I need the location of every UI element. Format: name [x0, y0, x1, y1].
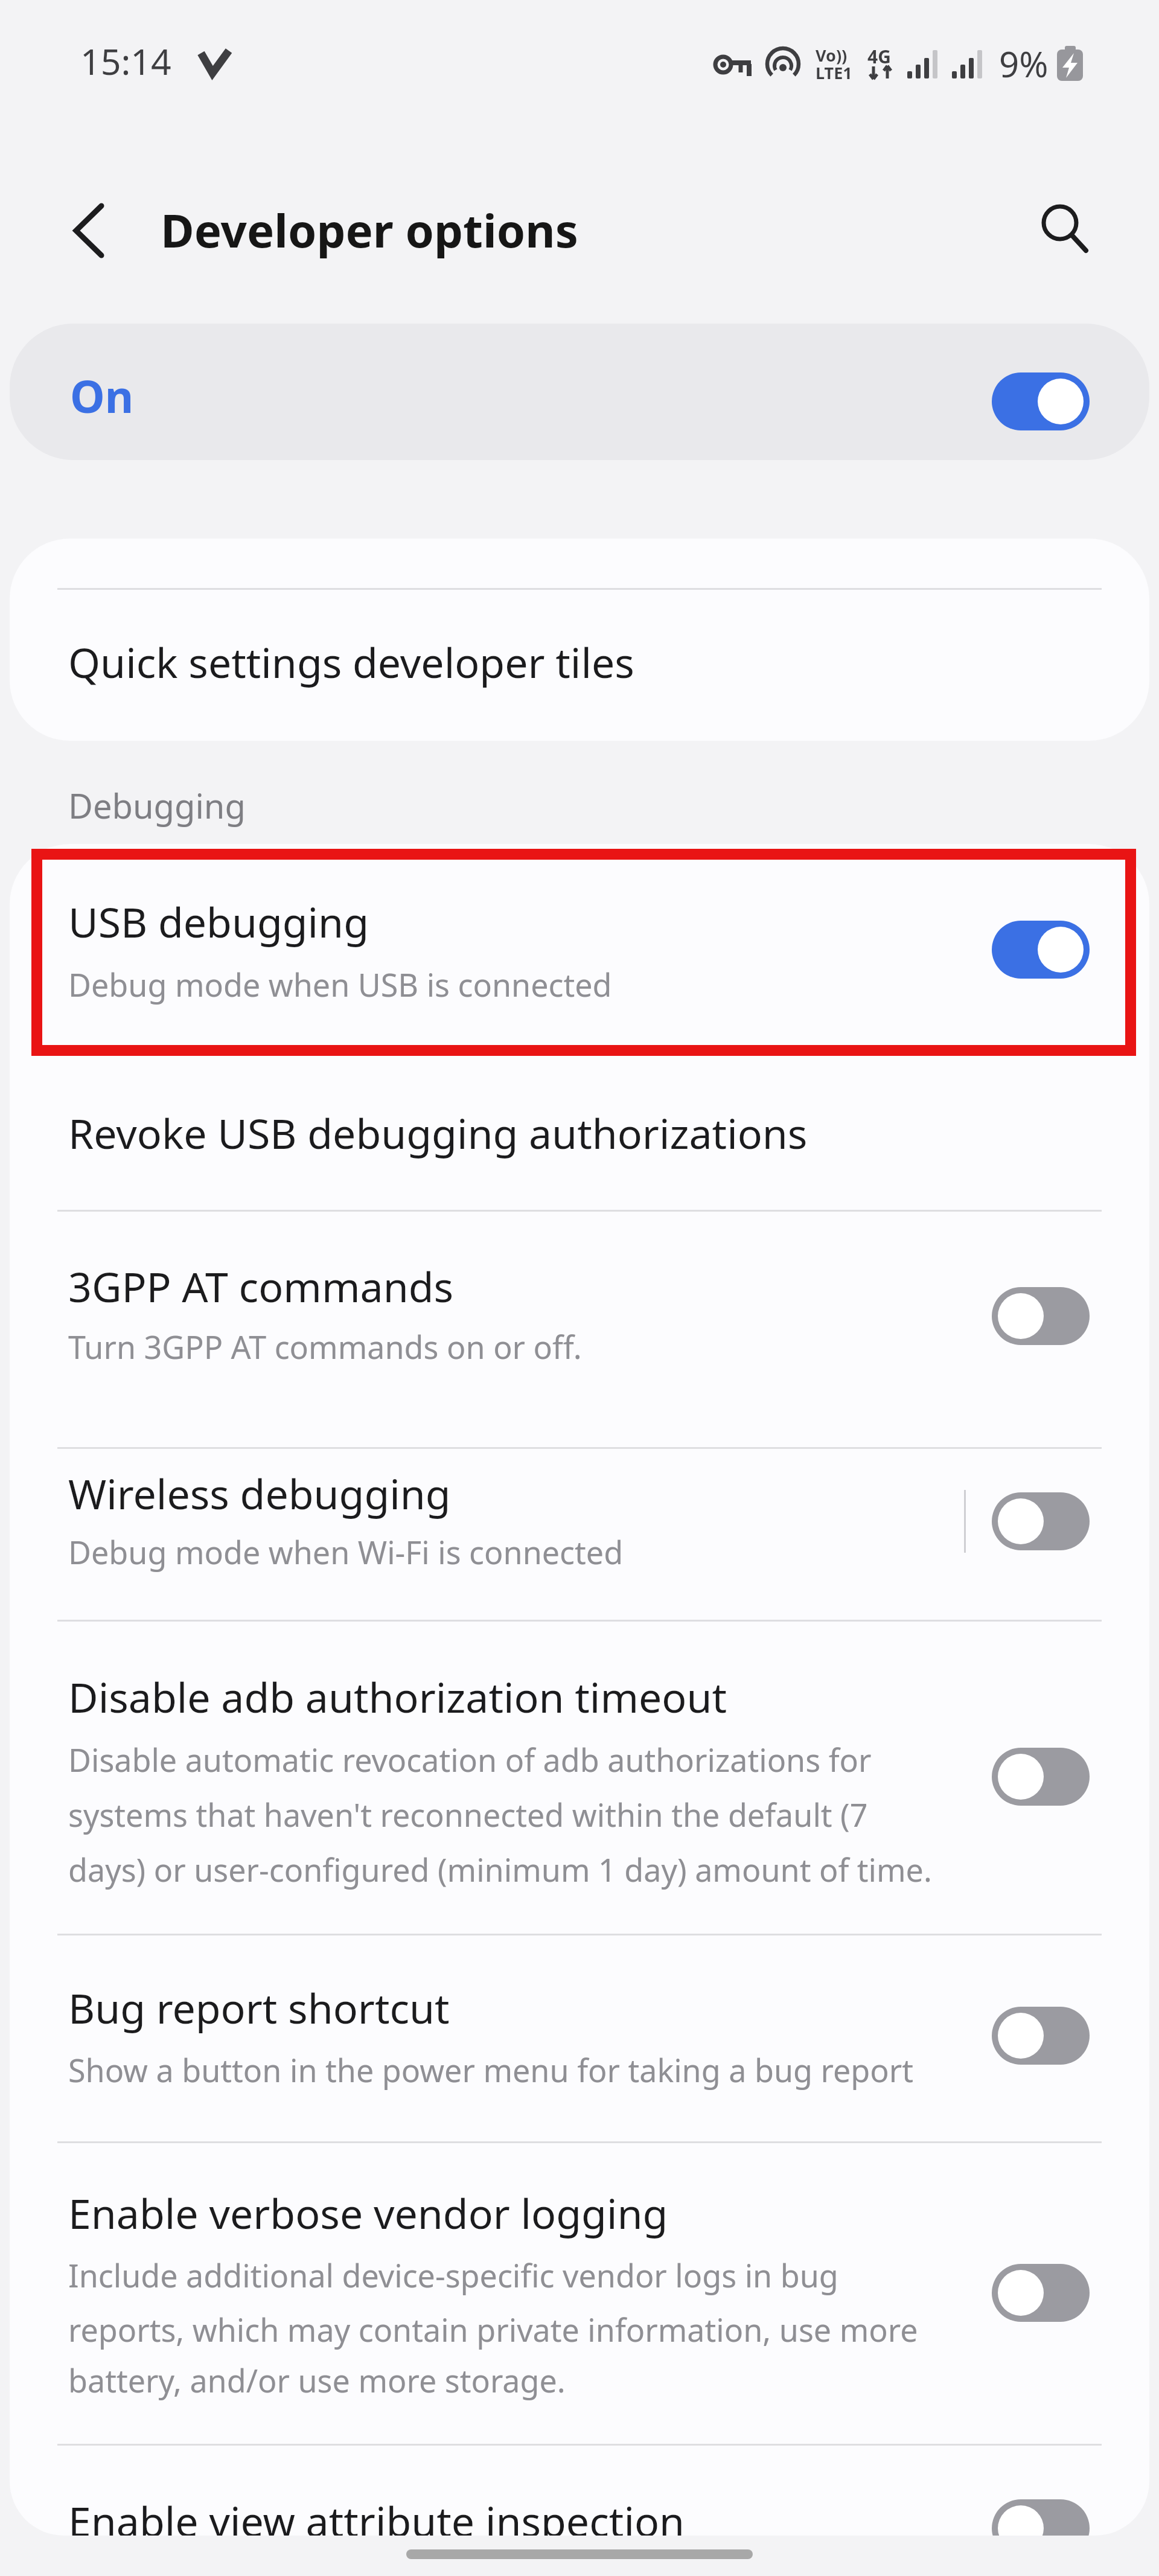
button[interactable] — [10, 2141, 1149, 2444]
button[interactable] — [10, 539, 1149, 741]
staticText: Debug mode when Wi-Fi is connected — [68, 1530, 624, 1573]
button[interactable] — [10, 1620, 1149, 1934]
staticText: Developer options — [161, 199, 578, 261]
staticText: Bug report shortcut — [68, 1980, 450, 2036]
staticText: systems that haven't reconnected within … — [68, 1793, 868, 1836]
staticText: Turn 3GPP AT commands on or off. — [68, 1325, 582, 1368]
button[interactable] — [1026, 193, 1099, 266]
button[interactable] — [10, 1056, 1149, 1210]
staticText: Enable view attribute inspection — [68, 2493, 685, 2549]
button[interactable] — [992, 1287, 1090, 1345]
button[interactable] — [10, 1210, 1149, 1447]
button[interactable] — [10, 1447, 1149, 1620]
button[interactable] — [992, 2264, 1090, 2322]
staticText: Debugging — [68, 782, 246, 828]
button[interactable] — [10, 1934, 1149, 2141]
button[interactable] — [60, 199, 121, 262]
staticText: 3GPP AT commands — [68, 1258, 454, 1314]
button[interactable] — [992, 921, 1090, 979]
staticText: 9% — [999, 40, 1049, 88]
staticText: Include additional device-specific vendo… — [68, 2254, 838, 2296]
button[interactable] — [10, 844, 1149, 1056]
staticText: Wireless debugging — [68, 1465, 451, 1521]
staticText: battery, and/or use more storage. — [68, 2359, 566, 2402]
button[interactable] — [10, 324, 1149, 460]
staticText: 4G — [867, 44, 891, 69]
staticText: reports, which may contain private infor… — [68, 2308, 918, 2351]
button[interactable] — [10, 2444, 1149, 2536]
staticText: On — [70, 366, 134, 426]
staticText: Quick settings developer tiles — [68, 634, 634, 690]
staticText: LTE1 — [816, 62, 852, 84]
staticText: Debug mode when USB is connected — [68, 963, 612, 1006]
staticText: Show a button in the power menu for taki… — [68, 2048, 913, 2091]
button[interactable] — [992, 1748, 1090, 1806]
button[interactable] — [992, 2499, 1090, 2557]
staticText: Revoke USB debugging authorizations — [68, 1105, 808, 1161]
staticText: Disable adb authorization timeout — [68, 1669, 727, 1725]
button[interactable] — [992, 1492, 1090, 1550]
staticText: Vo)) — [816, 44, 848, 66]
staticText: Disable automatic revocation of adb auth… — [68, 1738, 872, 1781]
staticText: days) or user-configured (minimum 1 day)… — [68, 1848, 932, 1891]
button[interactable] — [992, 2007, 1090, 2065]
button[interactable] — [992, 372, 1090, 430]
staticText: Enable verbose vendor logging — [68, 2185, 668, 2241]
staticText: USB debugging — [68, 893, 369, 950]
staticText: 15:14 — [80, 37, 171, 85]
